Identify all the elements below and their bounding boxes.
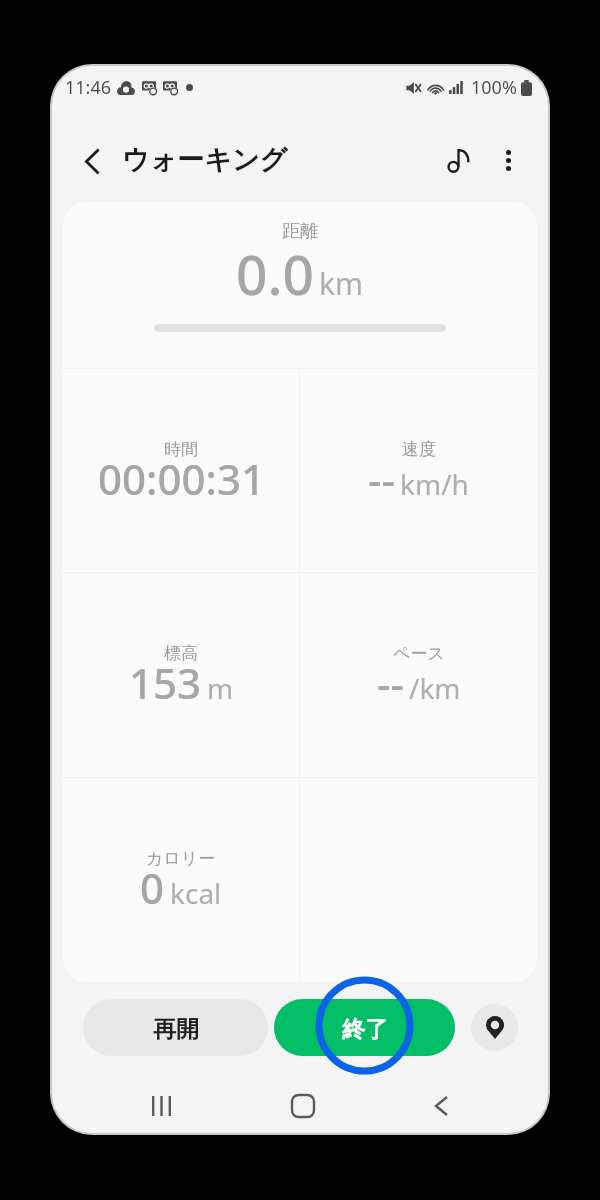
staticText: km: [319, 263, 364, 304]
staticText: 100%: [471, 75, 517, 100]
button[interactable]: 再開: [83, 999, 268, 1056]
staticText: 距離: [282, 220, 318, 243]
staticText: 11:46: [65, 75, 112, 100]
staticText: 0: [140, 859, 165, 916]
staticText: 速度: [402, 439, 436, 460]
staticText: ペース: [393, 643, 445, 664]
button[interactable]: 終了: [274, 999, 455, 1056]
staticText: --: [368, 450, 395, 507]
staticText: 0.0: [236, 236, 314, 311]
staticText: 00:00:31: [98, 450, 265, 507]
button[interactable]: Recents: [92, 1079, 230, 1133]
staticText: 時間: [164, 439, 198, 460]
staticText: 再開: [153, 1015, 199, 1044]
button[interactable]: More options: [486, 138, 530, 182]
button[interactable]: Location: [471, 1004, 518, 1051]
staticText: ウォーキング: [122, 143, 288, 177]
staticText: 終了: [342, 1015, 388, 1044]
staticText: kcal: [170, 874, 222, 912]
button[interactable]: Back: [369, 1079, 508, 1133]
staticText: m: [207, 669, 234, 707]
button[interactable]: Home: [230, 1079, 369, 1133]
staticText: --: [377, 654, 404, 711]
button[interactable]: Back: [64, 133, 120, 189]
staticText: km/h: [400, 465, 469, 503]
staticText: /km: [409, 669, 461, 707]
staticText: 153: [129, 654, 202, 711]
staticText: カロリー: [146, 848, 216, 869]
staticText: 標高: [164, 643, 198, 664]
button[interactable]: Music: [434, 136, 482, 184]
